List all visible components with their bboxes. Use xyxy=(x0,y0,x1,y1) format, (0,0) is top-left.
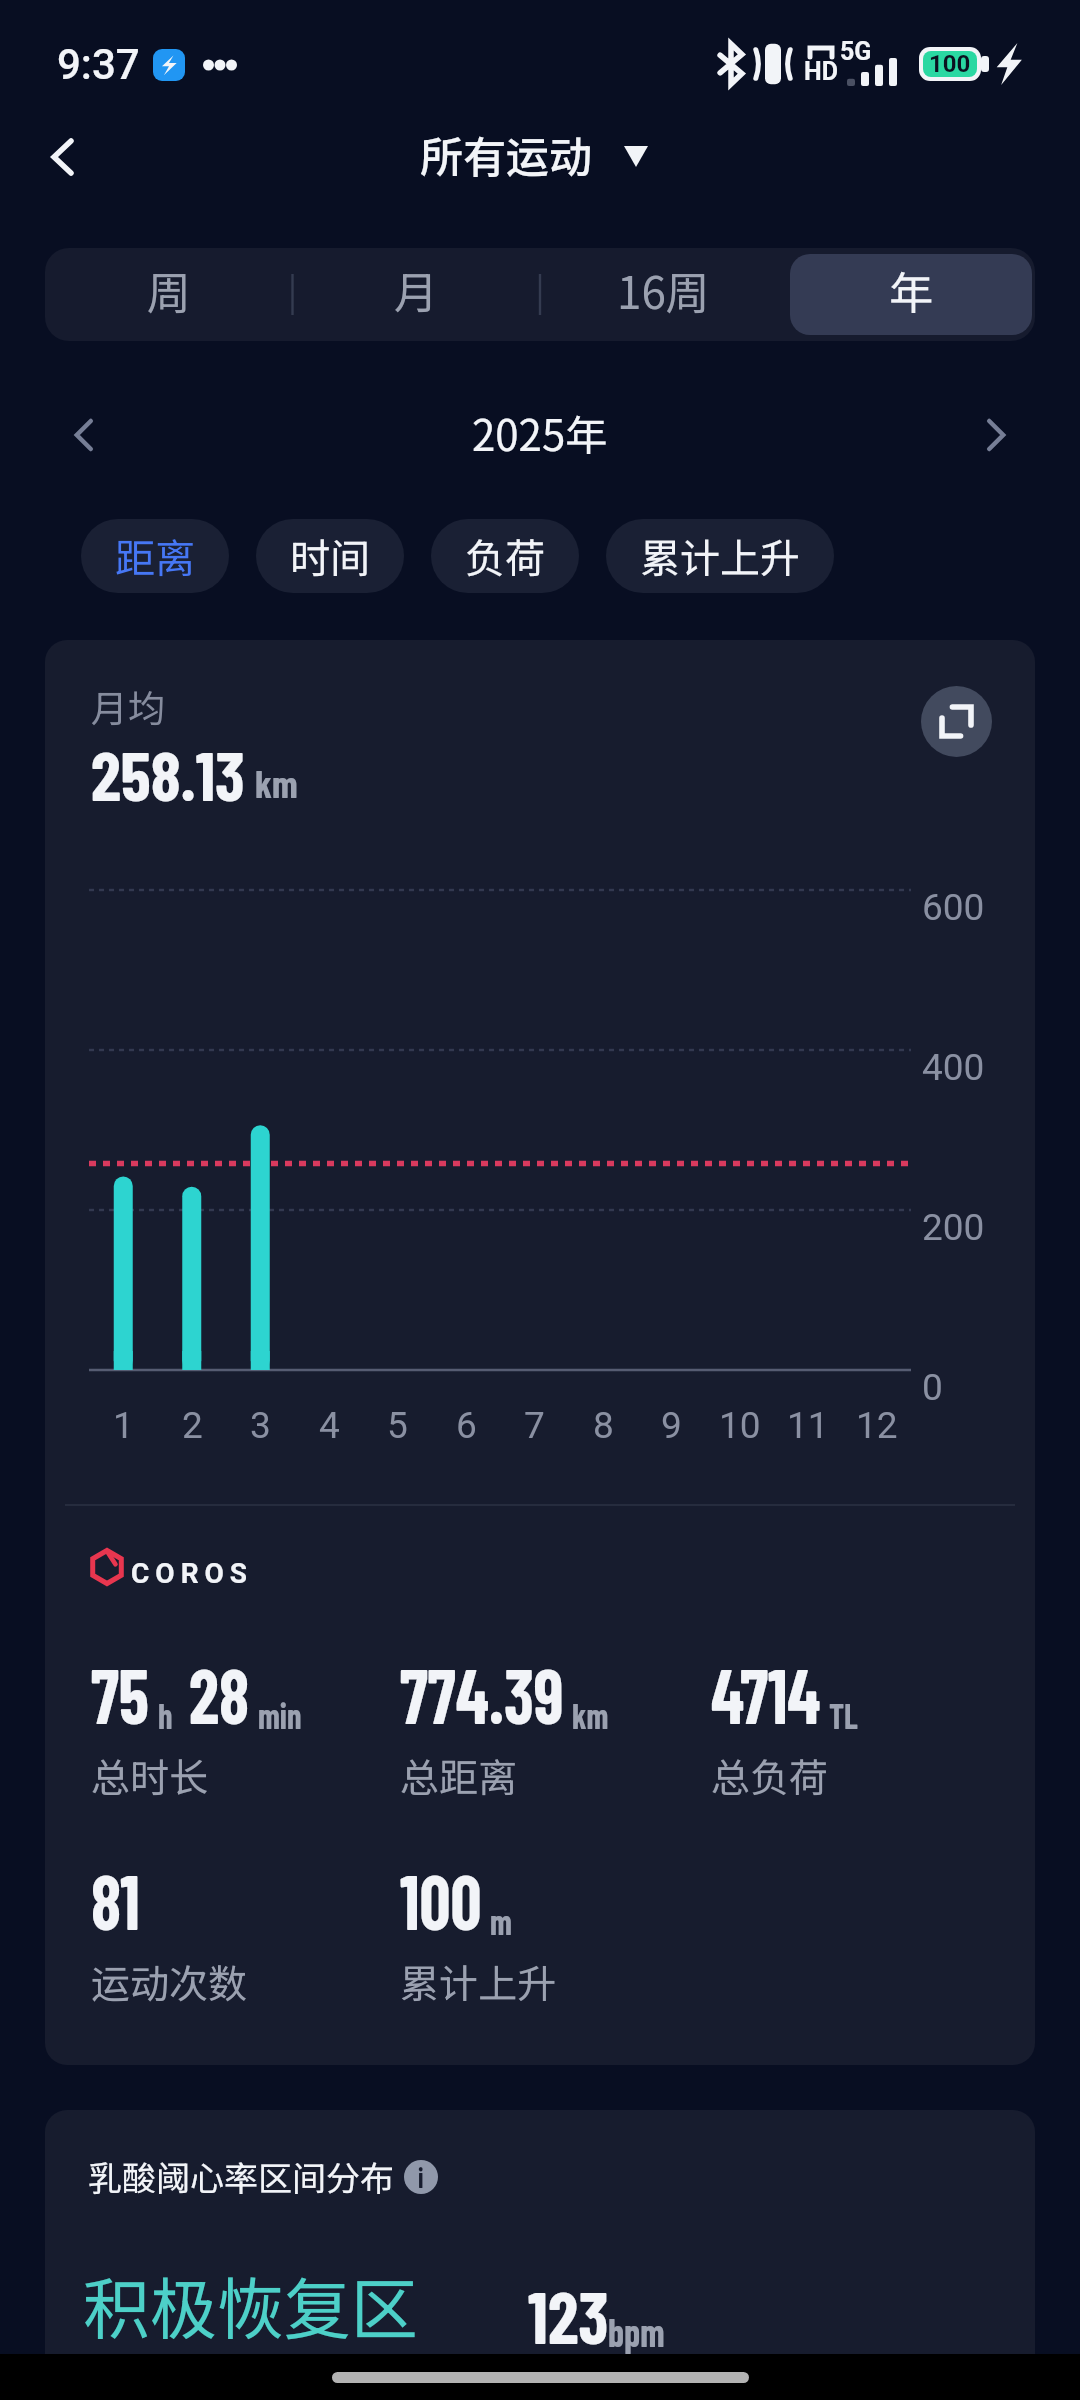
staticText: 123 xyxy=(528,2271,609,2359)
staticText: min xyxy=(258,1693,302,1736)
button[interactable]: Expand chart xyxy=(921,686,992,757)
staticText: 周 xyxy=(147,258,191,322)
staticText: 距离 xyxy=(115,527,195,585)
staticText: 总时长 xyxy=(91,1747,209,1803)
staticText: 负荷 xyxy=(465,527,545,585)
staticText: 累计上升 xyxy=(400,1953,557,2009)
staticText: 4 xyxy=(319,1404,340,1447)
button[interactable]: 距离 xyxy=(81,519,229,593)
staticText: 75 xyxy=(91,1648,149,1739)
staticText: 600 xyxy=(922,886,985,929)
button[interactable]: 负荷 xyxy=(431,519,579,593)
staticText: 2025年 xyxy=(472,402,608,463)
staticText: 100 xyxy=(400,1854,482,1945)
staticText: 200 xyxy=(922,1206,985,1249)
button[interactable]: 周 xyxy=(48,254,289,335)
staticText: 400 xyxy=(922,1046,985,1089)
staticText: km xyxy=(572,1693,609,1736)
staticText: 11 xyxy=(787,1404,829,1447)
staticText: 积极恢复区 xyxy=(83,2256,418,2353)
staticText: 81 xyxy=(91,1854,140,1945)
staticText: TL xyxy=(829,1693,859,1736)
staticText: 4714 xyxy=(711,1648,821,1739)
staticText: 总距离 xyxy=(400,1747,518,1803)
staticText: 100 xyxy=(929,50,971,78)
staticText: 258.13 xyxy=(91,733,245,815)
staticText: 0 xyxy=(922,1366,943,1409)
staticText: m xyxy=(490,1899,512,1942)
staticText: 累计上升 xyxy=(640,527,800,585)
staticText: 1 xyxy=(113,1404,134,1447)
staticText: 12 xyxy=(856,1404,898,1447)
staticText: 10 xyxy=(719,1404,761,1447)
staticText: HD xyxy=(804,57,838,86)
staticText: 28 xyxy=(189,1648,249,1739)
staticText: h xyxy=(158,1693,173,1736)
staticText: 所有运动 xyxy=(420,123,592,185)
staticText: 9:37 xyxy=(57,40,140,89)
button[interactable]: 累计上升 xyxy=(606,519,834,593)
staticText: 月均 xyxy=(91,679,165,733)
staticText: 5 xyxy=(387,1404,408,1447)
staticText: 9 xyxy=(661,1404,682,1447)
staticText: 6 xyxy=(456,1404,477,1447)
button[interactable]: Back xyxy=(26,121,98,193)
button[interactable]: Previous year xyxy=(50,399,122,471)
staticText: 年 xyxy=(889,258,933,322)
button[interactable]: 时间 xyxy=(256,519,404,593)
staticText: 5G xyxy=(840,37,872,66)
staticText: 3 xyxy=(250,1404,271,1447)
staticText: 7 xyxy=(524,1404,545,1447)
staticText: 时间 xyxy=(290,527,370,585)
staticText: 总负荷 xyxy=(711,1747,829,1803)
staticText: i xyxy=(418,2160,424,2194)
button[interactable]: Next year xyxy=(958,399,1030,471)
staticText: 2 xyxy=(182,1404,203,1447)
staticText: 8 xyxy=(593,1404,614,1447)
button[interactable]: 年 xyxy=(790,254,1032,335)
staticText: 月 xyxy=(394,258,438,322)
button[interactable]: 16周 xyxy=(542,254,784,335)
button[interactable]: 月 xyxy=(295,254,536,335)
staticText: km xyxy=(255,760,298,806)
staticText: 774.39 xyxy=(400,1648,564,1739)
button[interactable]: 所有运动 xyxy=(420,123,648,185)
staticText: 乳酸阈心率区间分布 xyxy=(88,2152,394,2201)
staticText: 运动次数 xyxy=(91,1953,248,2009)
staticText: COROS xyxy=(131,1557,254,1590)
staticText: bpm xyxy=(608,2307,665,2355)
staticText: 16周 xyxy=(617,258,710,322)
